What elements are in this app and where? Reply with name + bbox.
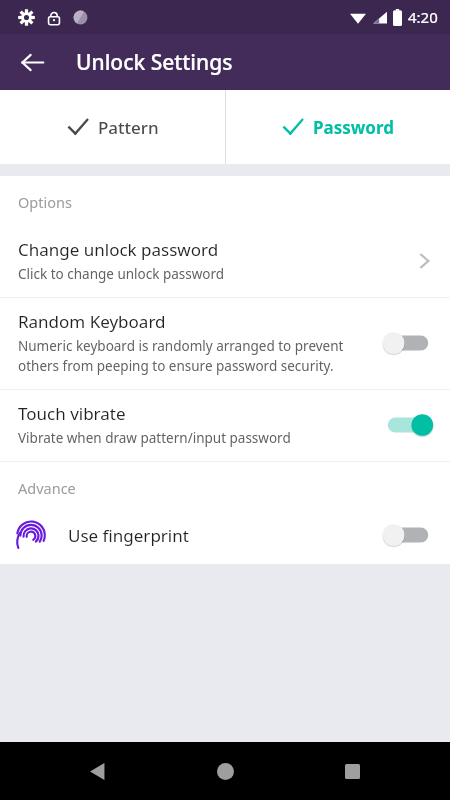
button[interactable]: Toggle on: [382, 410, 434, 440]
button[interactable]: Use fingerprint: [0, 512, 450, 564]
button[interactable]: Toggle off: [382, 328, 434, 358]
button[interactable]: Password: [225, 90, 450, 164]
staticText: Advance: [18, 478, 76, 498]
button[interactable]: Change unlock password: [0, 226, 450, 297]
staticText: Numeric keyboard is randomly arranged to…: [18, 337, 348, 375]
button[interactable]: Toggle off: [382, 520, 434, 550]
staticText: Pattern: [98, 116, 159, 139]
staticText: Password: [313, 116, 394, 139]
staticText: Random Keyboard: [18, 310, 166, 333]
staticText: Click to change unlock password: [18, 265, 225, 283]
button[interactable]: Back: [8, 38, 56, 86]
button[interactable]: Touch vibrate: [0, 390, 450, 461]
staticText: Use fingerprint: [68, 524, 382, 547]
staticText: Change unlock password: [18, 238, 219, 261]
staticText: Unlock Settings: [76, 48, 233, 77]
staticText: Touch vibrate: [18, 402, 126, 425]
staticText: Vibrate when draw pattern/input password: [18, 429, 291, 447]
button[interactable]: Random Keyboard: [0, 298, 450, 389]
staticText: 4:20: [408, 7, 438, 27]
button[interactable]: Home: [196, 742, 254, 800]
button[interactable]: Pattern: [0, 90, 225, 164]
staticText: Options: [18, 192, 72, 212]
button[interactable]: Back: [69, 742, 127, 800]
button[interactable]: Recent apps: [323, 742, 381, 800]
